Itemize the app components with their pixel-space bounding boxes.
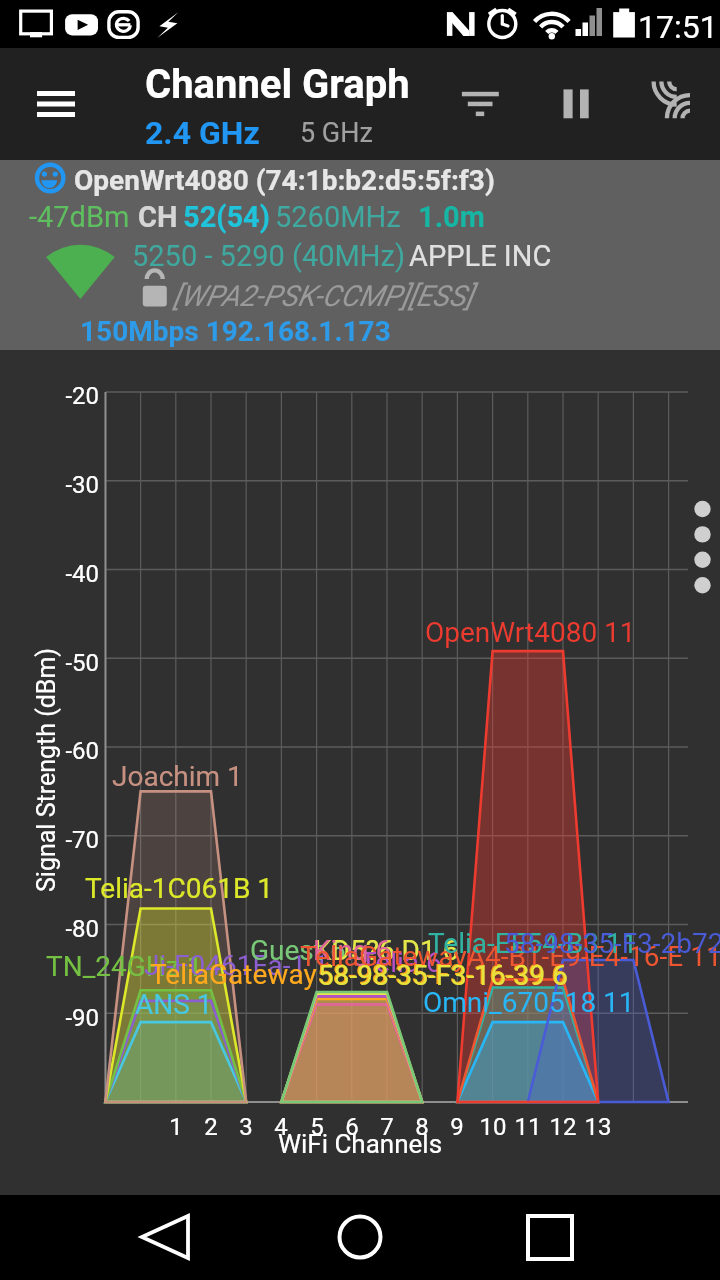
staticText: -90: [39, 1004, 99, 1032]
staticText: Telia-1C061B 1: [85, 872, 274, 905]
staticText: 2: [186, 1113, 236, 1141]
staticText: -70: [39, 826, 99, 854]
button[interactable]: Home: [320, 1197, 400, 1277]
staticText: 13: [573, 1113, 623, 1141]
staticText: 6: [327, 1113, 377, 1141]
staticText: 7: [362, 1113, 412, 1141]
staticText: -60: [39, 737, 99, 765]
staticText: -30: [39, 471, 99, 499]
button[interactable]: 2.4 GHz: [140, 112, 266, 152]
staticText: 4: [256, 1113, 306, 1141]
staticText: 5 GHz: [300, 117, 373, 149]
staticText: 150Mbps 192.168.1.173: [80, 315, 391, 348]
staticText: Channel Graph: [145, 61, 410, 108]
button[interactable]: Open navigation drawer: [8, 56, 104, 152]
staticText: TN_24GHz 1: [46, 950, 203, 983]
staticText: TeliaGatewayA4-B1-E9-E4-16-E 11: [300, 940, 720, 973]
staticText: Guest 6: [250, 934, 346, 967]
staticText: APPLE INC: [409, 239, 552, 273]
staticText: 52(54): [183, 200, 270, 234]
staticText: TeliaGateway58-98-35-F3-16-39 6: [150, 958, 567, 991]
staticText: 5260MHz: [275, 200, 401, 234]
staticText: 58-98-35-F3-16-39 6: [318, 959, 568, 992]
staticText: 8: [397, 1113, 447, 1141]
staticText: WiFi Channels: [0, 1129, 720, 1159]
button[interactable]: Pause scanning: [528, 56, 624, 152]
staticText: OpenWrt4080 11: [425, 616, 636, 649]
button[interactable]: 5 GHz: [295, 112, 375, 152]
button[interactable]: Back: [130, 1197, 210, 1277]
staticText: -40: [39, 560, 99, 588]
staticText: 10: [468, 1113, 518, 1141]
staticText: Telia-EE54-B3 11: [428, 927, 638, 960]
staticText: [WPA2-PSK-CCMP][ESS]: [173, 279, 473, 313]
staticText: -20: [39, 382, 99, 410]
staticText: 5250 - 5290 (40MHz): [132, 239, 405, 273]
staticText: -47dBm: [29, 200, 130, 234]
staticText: Signal Strength (dBm): [32, 620, 61, 920]
button[interactable]: Filter access points: [432, 56, 528, 152]
button[interactable]: Wi-Fi band: [624, 56, 720, 152]
staticText: 2.4 GHz: [145, 114, 260, 152]
staticText: 5: [292, 1113, 342, 1141]
staticText: -80: [39, 915, 99, 943]
staticText: ANS 1: [135, 988, 213, 1021]
staticText: 1.0m: [418, 200, 485, 234]
button[interactable]: [0, 160, 720, 350]
staticText: Omni_670518 11: [423, 986, 635, 1019]
staticText: 9: [432, 1113, 482, 1141]
staticText: Joachim 1: [112, 760, 243, 793]
staticText: 11: [503, 1113, 553, 1141]
staticText: OpenWrt4080 (74:1b:b2:d5:5f:f3): [74, 164, 495, 197]
staticText: Ji-F0461Fa-1 1: [144, 949, 329, 982]
staticText: 58-98-35-F3-2b72e 13: [504, 927, 720, 960]
staticText: 1: [151, 1113, 201, 1141]
staticText: 12: [538, 1113, 588, 1141]
staticText: Telia 6: [360, 946, 442, 979]
button[interactable]: Recent apps: [510, 1197, 590, 1277]
staticText: -50: [39, 649, 99, 677]
staticText: CH: [138, 200, 178, 234]
staticText: 3: [221, 1113, 271, 1141]
staticText: King 6: [313, 934, 392, 967]
staticText: 17:51: [638, 8, 718, 46]
staticText: KD5?6 D1 6: [314, 934, 459, 967]
